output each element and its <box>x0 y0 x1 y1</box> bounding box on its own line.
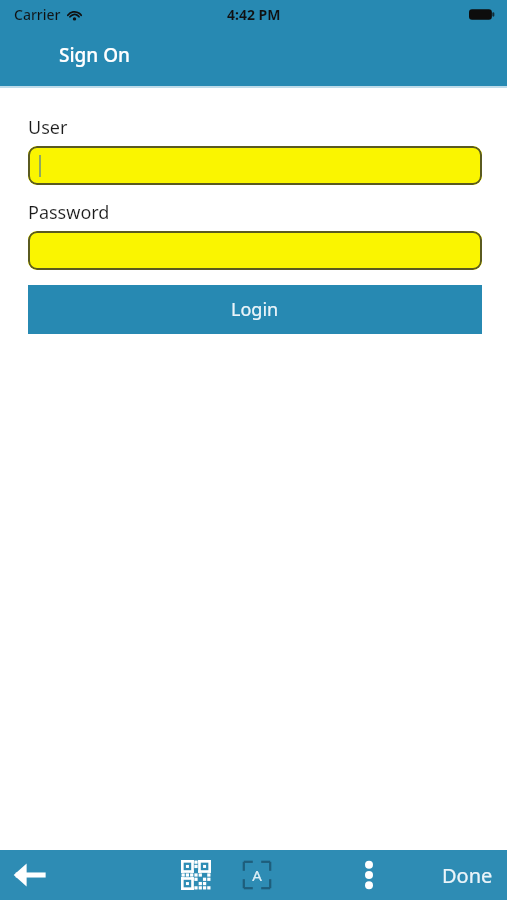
staticText: Done <box>442 862 493 889</box>
button[interactable]: Scan text <box>233 851 281 899</box>
button[interactable] <box>28 231 482 270</box>
staticText: User <box>28 115 68 140</box>
button[interactable]: Back <box>6 851 54 899</box>
button[interactable]: Login <box>28 285 482 334</box>
staticText: A <box>252 865 262 885</box>
button[interactable] <box>28 146 482 185</box>
staticText: Carrier <box>14 5 61 24</box>
button[interactable]: More options <box>345 851 393 899</box>
button[interactable]: Scan QR code <box>172 851 220 899</box>
staticText: Login <box>231 297 279 322</box>
staticText: Password <box>28 200 110 225</box>
button[interactable]: Done <box>442 862 493 889</box>
staticText: 4:42 PM <box>227 5 281 24</box>
staticText: Sign On <box>59 42 131 68</box>
